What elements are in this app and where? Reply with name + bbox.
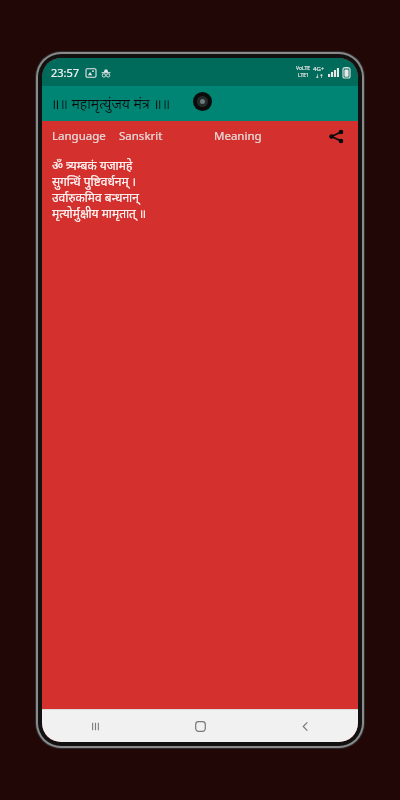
staticText: ॐ त्र्यम्बकं यजामहे xyxy=(52,157,133,173)
staticText: सुगन्धिं पुष्टिवर्धनम् । xyxy=(52,173,137,189)
button[interactable]: Recent apps xyxy=(42,710,148,742)
staticText: Sanskrit xyxy=(119,128,163,144)
button[interactable]: Language xyxy=(50,124,108,148)
staticText: VoLTE xyxy=(296,65,311,72)
button[interactable]: Share xyxy=(324,124,348,148)
staticText: ↓↑ xyxy=(315,73,324,79)
staticText: Meaning xyxy=(214,128,262,144)
button[interactable]: Sanskrit xyxy=(117,124,165,148)
button[interactable]: Back xyxy=(253,710,358,742)
button[interactable]: Meaning xyxy=(212,124,264,148)
staticText: मृत्योर्मुक्षीय मामृतात् ॥ xyxy=(52,205,147,221)
staticText: 4G+ xyxy=(313,65,325,73)
staticText: ॥॥ महामृत्युंजय मंत्र ॥॥ xyxy=(51,94,171,113)
button[interactable]: Home xyxy=(148,710,253,742)
staticText: Language xyxy=(52,128,106,144)
staticText: उर्वारुकमिव बन्धनान् xyxy=(52,189,139,205)
staticText: 23:57 xyxy=(51,65,80,80)
staticText: LTE1 xyxy=(298,72,309,79)
